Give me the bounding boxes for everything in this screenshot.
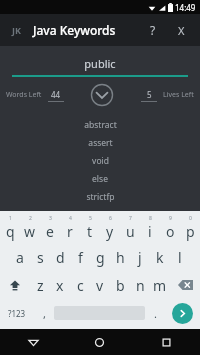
staticText: 2 <box>29 215 32 222</box>
staticText: 5 <box>147 89 152 100</box>
staticText: 8 <box>149 215 152 222</box>
staticText: p <box>186 222 195 241</box>
staticText: r <box>67 222 73 241</box>
staticText: 5 <box>89 215 92 222</box>
staticText: ? <box>150 22 156 38</box>
staticText: 7 <box>129 215 132 222</box>
button[interactable]: s <box>30 243 50 271</box>
staticText: 6 <box>109 215 112 222</box>
staticText: j <box>138 248 142 267</box>
staticText: . <box>154 306 157 321</box>
staticText: b <box>116 276 125 295</box>
staticText: 14:49 <box>175 2 196 13</box>
staticText: a <box>16 248 24 267</box>
staticText: Java Keywords <box>33 22 116 38</box>
staticText: 44 <box>51 89 61 100</box>
staticText: 0 <box>189 215 192 222</box>
staticText: ?123 <box>8 308 26 319</box>
staticText: strictfp <box>86 191 115 203</box>
staticText: z <box>37 276 44 295</box>
staticText: x <box>56 276 64 295</box>
button[interactable]: void <box>0 155 200 167</box>
button[interactable]: a <box>10 243 30 271</box>
staticText: 3 <box>49 215 52 222</box>
button[interactable]: n <box>130 271 150 299</box>
staticText: 4 <box>69 215 72 222</box>
button[interactable]: m <box>150 271 170 299</box>
staticText: q <box>6 222 15 241</box>
staticText: h <box>116 248 125 267</box>
staticText: c <box>77 276 84 295</box>
button[interactable]: v <box>90 271 110 299</box>
staticText: g <box>96 248 105 267</box>
staticText: m <box>153 276 167 295</box>
button[interactable]: 7 <box>120 213 140 243</box>
button[interactable]: , <box>34 299 54 327</box>
button[interactable]: JK <box>7 21 25 39</box>
button[interactable]: Help <box>141 18 165 42</box>
button[interactable]: j <box>130 243 150 271</box>
button[interactable]: b <box>110 271 130 299</box>
staticText: 1 <box>9 215 12 222</box>
button[interactable]: Close <box>169 18 193 42</box>
button[interactable]: Enter <box>172 303 193 324</box>
staticText: Words Left <box>6 90 42 100</box>
button[interactable]: h <box>110 243 130 271</box>
staticText: void <box>92 155 109 167</box>
button[interactable]: abstract <box>0 119 200 131</box>
staticText: JK <box>12 24 21 36</box>
button[interactable]: z <box>30 271 50 299</box>
staticText: w <box>24 222 36 241</box>
button[interactable]: Recents <box>133 329 200 355</box>
button[interactable]: c <box>70 271 90 299</box>
button[interactable]: d <box>50 243 70 271</box>
staticText: abstract <box>84 119 117 131</box>
button[interactable]: 1 <box>0 213 20 243</box>
button[interactable]: assert <box>0 137 200 149</box>
staticText: i <box>148 222 152 241</box>
button[interactable]: 4 <box>60 213 80 243</box>
staticText: u <box>126 222 135 241</box>
staticText: v <box>96 276 104 295</box>
button[interactable]: ?123 <box>0 299 34 327</box>
button[interactable]: else <box>0 173 200 185</box>
staticText: t <box>87 222 93 241</box>
staticText: d <box>56 248 65 267</box>
staticText: s <box>37 248 44 267</box>
staticText: Lives Left <box>163 90 194 100</box>
button[interactable]: l <box>170 243 190 271</box>
button[interactable]: 5 <box>80 213 100 243</box>
button[interactable]: strictfp <box>0 191 200 203</box>
button[interactable]: 6 <box>100 213 120 243</box>
button[interactable]: f <box>70 243 90 271</box>
staticText: k <box>156 248 164 267</box>
button[interactable]: 0 <box>180 213 200 243</box>
staticText: y <box>106 222 114 241</box>
button[interactable]: . <box>145 299 165 327</box>
staticText: else <box>92 173 108 185</box>
staticText: n <box>136 276 145 295</box>
button[interactable]: 2 <box>20 213 40 243</box>
button[interactable]: k <box>150 243 170 271</box>
button[interactable]: Back <box>0 329 66 355</box>
staticText: public <box>84 56 116 71</box>
staticText: l <box>178 248 182 267</box>
staticText: 9 <box>169 215 172 222</box>
staticText: X <box>178 23 185 38</box>
button[interactable]: 9 <box>160 213 180 243</box>
staticText: , <box>43 306 46 321</box>
staticText: assert <box>88 137 113 149</box>
button[interactable]: Show more words <box>90 83 114 107</box>
button[interactable]: g <box>90 243 110 271</box>
button[interactable]: Home <box>66 329 133 355</box>
button[interactable]: 8 <box>140 213 160 243</box>
button[interactable]: 3 <box>40 213 60 243</box>
staticText: f <box>78 248 83 267</box>
button[interactable]: x <box>50 271 70 299</box>
staticText: e <box>46 222 54 241</box>
button[interactable]: Shift <box>0 271 30 299</box>
button[interactable]: Backspace <box>170 271 200 299</box>
